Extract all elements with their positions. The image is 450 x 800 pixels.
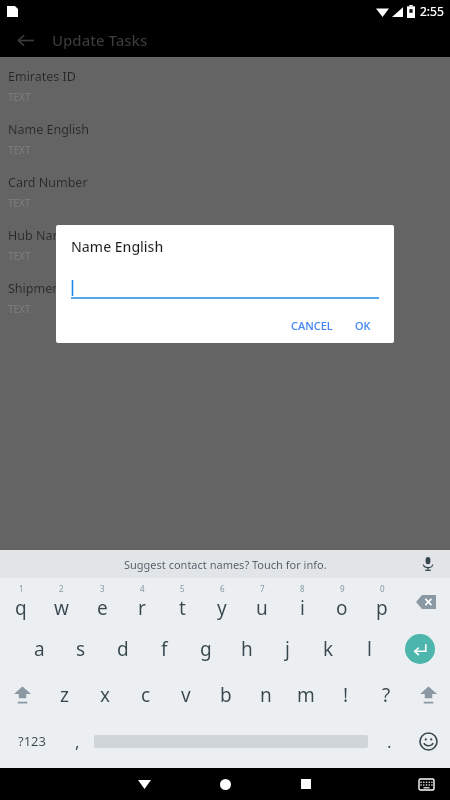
button[interactable]: z	[44, 672, 85, 718]
staticText: h	[241, 636, 253, 662]
staticText: Update Tasks	[52, 30, 148, 50]
button[interactable]: a	[18, 626, 60, 672]
staticText: ?	[382, 682, 391, 708]
button[interactable]: Back	[128, 768, 160, 800]
button[interactable]: Backspace	[402, 578, 450, 626]
button[interactable]: m	[286, 672, 326, 718]
staticText: 3	[100, 583, 105, 594]
staticText: r	[138, 595, 146, 621]
staticText: TEXT	[8, 302, 31, 316]
button[interactable]: 3	[82, 578, 122, 626]
staticText: 8	[300, 583, 305, 594]
staticText: Name English	[8, 121, 90, 138]
button[interactable]: ?	[366, 672, 406, 718]
button[interactable]: Emirates ID	[0, 64, 450, 108]
staticText: k	[323, 636, 334, 662]
staticText: 2	[59, 583, 64, 594]
staticText: g	[200, 636, 212, 662]
staticText: j	[285, 636, 290, 662]
button[interactable]: Shipment	[0, 276, 450, 320]
staticText: .	[387, 730, 392, 753]
button[interactable]: ?123	[0, 718, 64, 764]
button[interactable]: 8	[282, 578, 322, 626]
button[interactable]: h	[226, 626, 267, 672]
button[interactable]: x	[85, 672, 126, 718]
staticText: Suggest contact names? Touch for info.	[124, 557, 327, 572]
button[interactable]: Home	[209, 768, 241, 800]
button[interactable]: Recent apps	[290, 768, 322, 800]
staticText: e	[97, 595, 108, 621]
button[interactable]: 0	[362, 578, 402, 626]
staticText: o	[336, 595, 348, 621]
button[interactable]: j	[267, 626, 308, 672]
staticText: n	[260, 682, 272, 708]
button[interactable]: l	[349, 626, 390, 672]
button[interactable]: v	[166, 672, 206, 718]
button[interactable]	[71, 277, 379, 299]
button[interactable]: n	[246, 672, 286, 718]
staticText: 5	[180, 583, 185, 594]
staticText: f	[161, 636, 168, 662]
button[interactable]: Card Number	[0, 170, 450, 214]
button[interactable]: 9	[322, 578, 362, 626]
button[interactable]: f	[144, 626, 185, 672]
button[interactable]: ,	[64, 718, 90, 764]
staticText: l	[367, 636, 372, 662]
button[interactable]: k	[308, 626, 349, 672]
staticText: TEXT	[8, 196, 31, 210]
staticText: Hub Name	[8, 227, 72, 244]
staticText: Card Number	[8, 174, 88, 191]
button[interactable]: CANCEL	[284, 313, 340, 338]
staticText: CANCEL	[291, 318, 333, 333]
staticText: OK	[355, 318, 371, 333]
staticText: u	[256, 595, 268, 621]
button[interactable]: Shift	[406, 672, 450, 718]
button[interactable]: Suggest contact names? Touch for info.	[0, 550, 450, 578]
staticText: b	[220, 682, 232, 708]
button[interactable]: Enter	[390, 626, 450, 672]
staticText: Emirates ID	[8, 68, 76, 85]
button[interactable]: g	[185, 626, 226, 672]
staticText: s	[76, 636, 86, 662]
staticText: 0	[380, 583, 385, 594]
staticText: 1	[19, 583, 24, 594]
button[interactable]: Hub Name	[0, 223, 450, 267]
button[interactable]: 2	[41, 578, 82, 626]
button[interactable]: d	[102, 626, 144, 672]
button[interactable]: !	[326, 672, 366, 718]
staticText: i	[300, 595, 305, 621]
staticText: 9	[340, 583, 345, 594]
staticText: v	[181, 682, 191, 708]
button[interactable]: b	[206, 672, 246, 718]
staticText: !	[343, 682, 349, 708]
staticText: 4	[140, 583, 145, 594]
button[interactable]: Shift	[0, 672, 44, 718]
button[interactable]: c	[126, 672, 166, 718]
button[interactable]: 5	[162, 578, 202, 626]
button[interactable]: Switch keyboard	[412, 770, 440, 798]
staticText: 6	[220, 583, 225, 594]
button[interactable]: Name English	[0, 117, 450, 161]
button[interactable]: OK	[348, 313, 378, 338]
button[interactable]: Back	[8, 23, 42, 57]
staticText: TEXT	[8, 143, 31, 157]
staticText: x	[100, 682, 111, 708]
staticText: q	[15, 595, 27, 621]
button[interactable]	[90, 718, 372, 764]
staticText: w	[54, 595, 69, 621]
staticText: t	[179, 595, 186, 621]
button[interactable]: .	[372, 718, 406, 764]
staticText: y	[217, 595, 227, 621]
button[interactable]: 6	[202, 578, 242, 626]
staticText: c	[141, 682, 151, 708]
staticText: d	[117, 636, 129, 662]
staticText: TEXT	[8, 249, 31, 263]
button[interactable]: s	[60, 626, 102, 672]
staticText: Name English	[71, 237, 164, 256]
button[interactable]: 1	[0, 578, 41, 626]
button[interactable]: 4	[122, 578, 162, 626]
button[interactable]: 7	[242, 578, 282, 626]
button[interactable]: Voice input	[416, 552, 440, 576]
button[interactable]: Emoji	[406, 718, 450, 764]
staticText: Shipment	[8, 280, 65, 297]
